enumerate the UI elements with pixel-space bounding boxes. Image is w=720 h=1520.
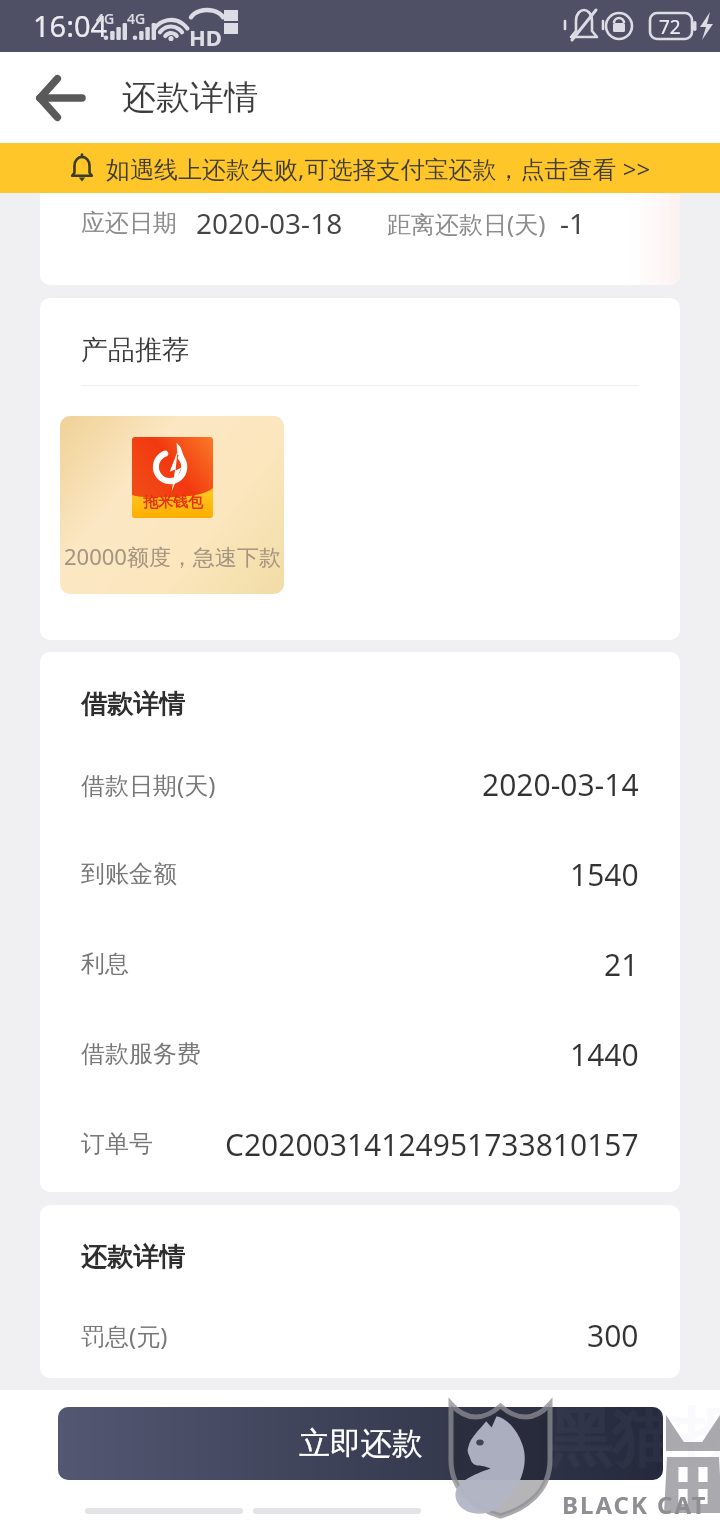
staticText: 距离还款日(天) [387,207,546,240]
staticText: 300 [587,1315,639,1356]
staticText: 1540 [570,854,639,895]
staticText: 立即还款 [299,1424,423,1463]
staticText: 借款详情 [81,688,185,721]
staticText: 产品推荐 [81,333,189,367]
staticText: 到账金额 [81,859,177,889]
staticText: 72 [659,14,681,40]
staticText: 还款详情 [122,76,258,119]
staticText: 黑猫投诉 [548,1398,720,1479]
staticText: 黑猫投诉 [548,1398,720,1479]
staticText: 拖米钱包 [143,493,203,512]
staticText: 2020-03-14 [482,764,639,805]
staticText: BLACK CAT [562,1488,708,1520]
staticText: 20000额度，急速下款 [64,541,281,571]
staticText: 订单号 [81,1129,153,1159]
staticText: 如遇线上还款失败,可选择支付宝还款，点击查看 >> [106,152,651,185]
staticText: 21 [604,944,639,985]
staticText: 4G [127,9,146,28]
staticText: 16:04 [33,6,108,45]
button[interactable]: 拖米钱包 [60,416,284,594]
staticText: 借款日期(天) [81,768,216,801]
staticText: 利息 [81,949,129,979]
staticText: HD [189,22,222,52]
button[interactable]: 立即还款 [58,1407,663,1480]
staticText: 应还日期 [81,208,177,238]
staticText: 借款服务费 [81,1039,201,1069]
staticText: -1 [560,204,586,242]
staticText: 2020-03-18 [196,204,343,242]
staticText: 罚息(元) [81,1319,168,1352]
staticText: 还款详情 [81,1241,185,1274]
staticText: C20200314124951733810157 [225,1124,639,1165]
button[interactable]: 如遇线上还款失败,可选择支付宝还款，点击查看 >> [0,143,720,193]
staticText: 1440 [570,1034,639,1075]
staticText: 4G [96,9,115,28]
button[interactable]: Back [26,63,96,133]
